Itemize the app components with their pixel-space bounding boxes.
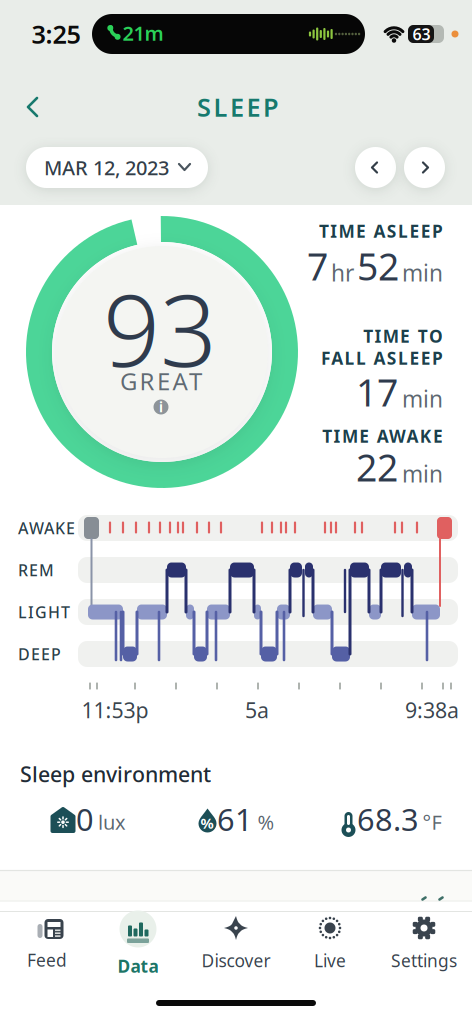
staticText: Discover bbox=[201, 949, 270, 972]
button[interactable]: Previous day bbox=[355, 147, 396, 188]
button[interactable]: Live bbox=[290, 912, 370, 976]
staticText: 93 bbox=[103, 262, 217, 394]
button[interactable]: Next day bbox=[404, 147, 445, 188]
button[interactable]: Data bbox=[98, 909, 178, 979]
staticText: min bbox=[402, 384, 443, 414]
staticText: 61 bbox=[217, 799, 253, 839]
staticText: DEEP bbox=[18, 643, 61, 665]
staticText: MAR 12, 2023 bbox=[44, 154, 169, 181]
staticText: LIGHT bbox=[18, 601, 70, 623]
button[interactable]: Discover bbox=[192, 912, 280, 976]
staticText: hr bbox=[331, 258, 354, 288]
staticText: REM bbox=[18, 559, 54, 581]
staticText: 52 bbox=[357, 241, 399, 291]
staticText: TIME TO bbox=[363, 324, 443, 347]
staticText: °F bbox=[422, 809, 441, 835]
staticText: AWAKE bbox=[18, 517, 75, 539]
staticText: 22 bbox=[356, 442, 398, 492]
staticText: 11:53p bbox=[81, 696, 148, 724]
staticText: 17 bbox=[356, 367, 398, 417]
staticText: Data bbox=[117, 954, 158, 977]
button[interactable]: Back bbox=[23, 94, 49, 120]
staticText: 3:25 bbox=[31, 17, 80, 51]
staticText: 0 bbox=[76, 799, 94, 839]
staticText: 7 bbox=[307, 241, 328, 291]
staticText: 5a bbox=[245, 696, 269, 724]
staticText: Sleep environment bbox=[20, 760, 211, 788]
staticText: TIME AWAKE bbox=[322, 424, 443, 447]
staticText: min bbox=[402, 258, 443, 288]
staticText: Feed bbox=[27, 948, 67, 971]
staticText: 21m bbox=[122, 20, 163, 46]
staticText: 63 bbox=[412, 23, 430, 45]
staticText: % bbox=[200, 813, 213, 833]
staticText: Settings bbox=[391, 949, 457, 972]
button[interactable]: MAR 12, 2023 bbox=[26, 147, 208, 188]
staticText: i bbox=[159, 398, 163, 416]
staticText: 9:38a bbox=[405, 696, 459, 724]
staticText: GREAT bbox=[120, 365, 202, 397]
staticText: SLEEP bbox=[197, 90, 279, 124]
staticText: lux bbox=[98, 809, 126, 835]
button[interactable]: Feed bbox=[7, 912, 87, 976]
staticText: 68.3 bbox=[357, 799, 419, 839]
button[interactable]: Score info bbox=[153, 398, 168, 416]
staticText: TIME ASLEEP bbox=[319, 219, 443, 242]
button[interactable]: Settings bbox=[380, 912, 468, 976]
staticText: min bbox=[402, 459, 443, 489]
staticText: FALL ASLEEP bbox=[321, 346, 443, 369]
staticText: Live bbox=[314, 949, 346, 972]
staticText: % bbox=[257, 809, 274, 835]
